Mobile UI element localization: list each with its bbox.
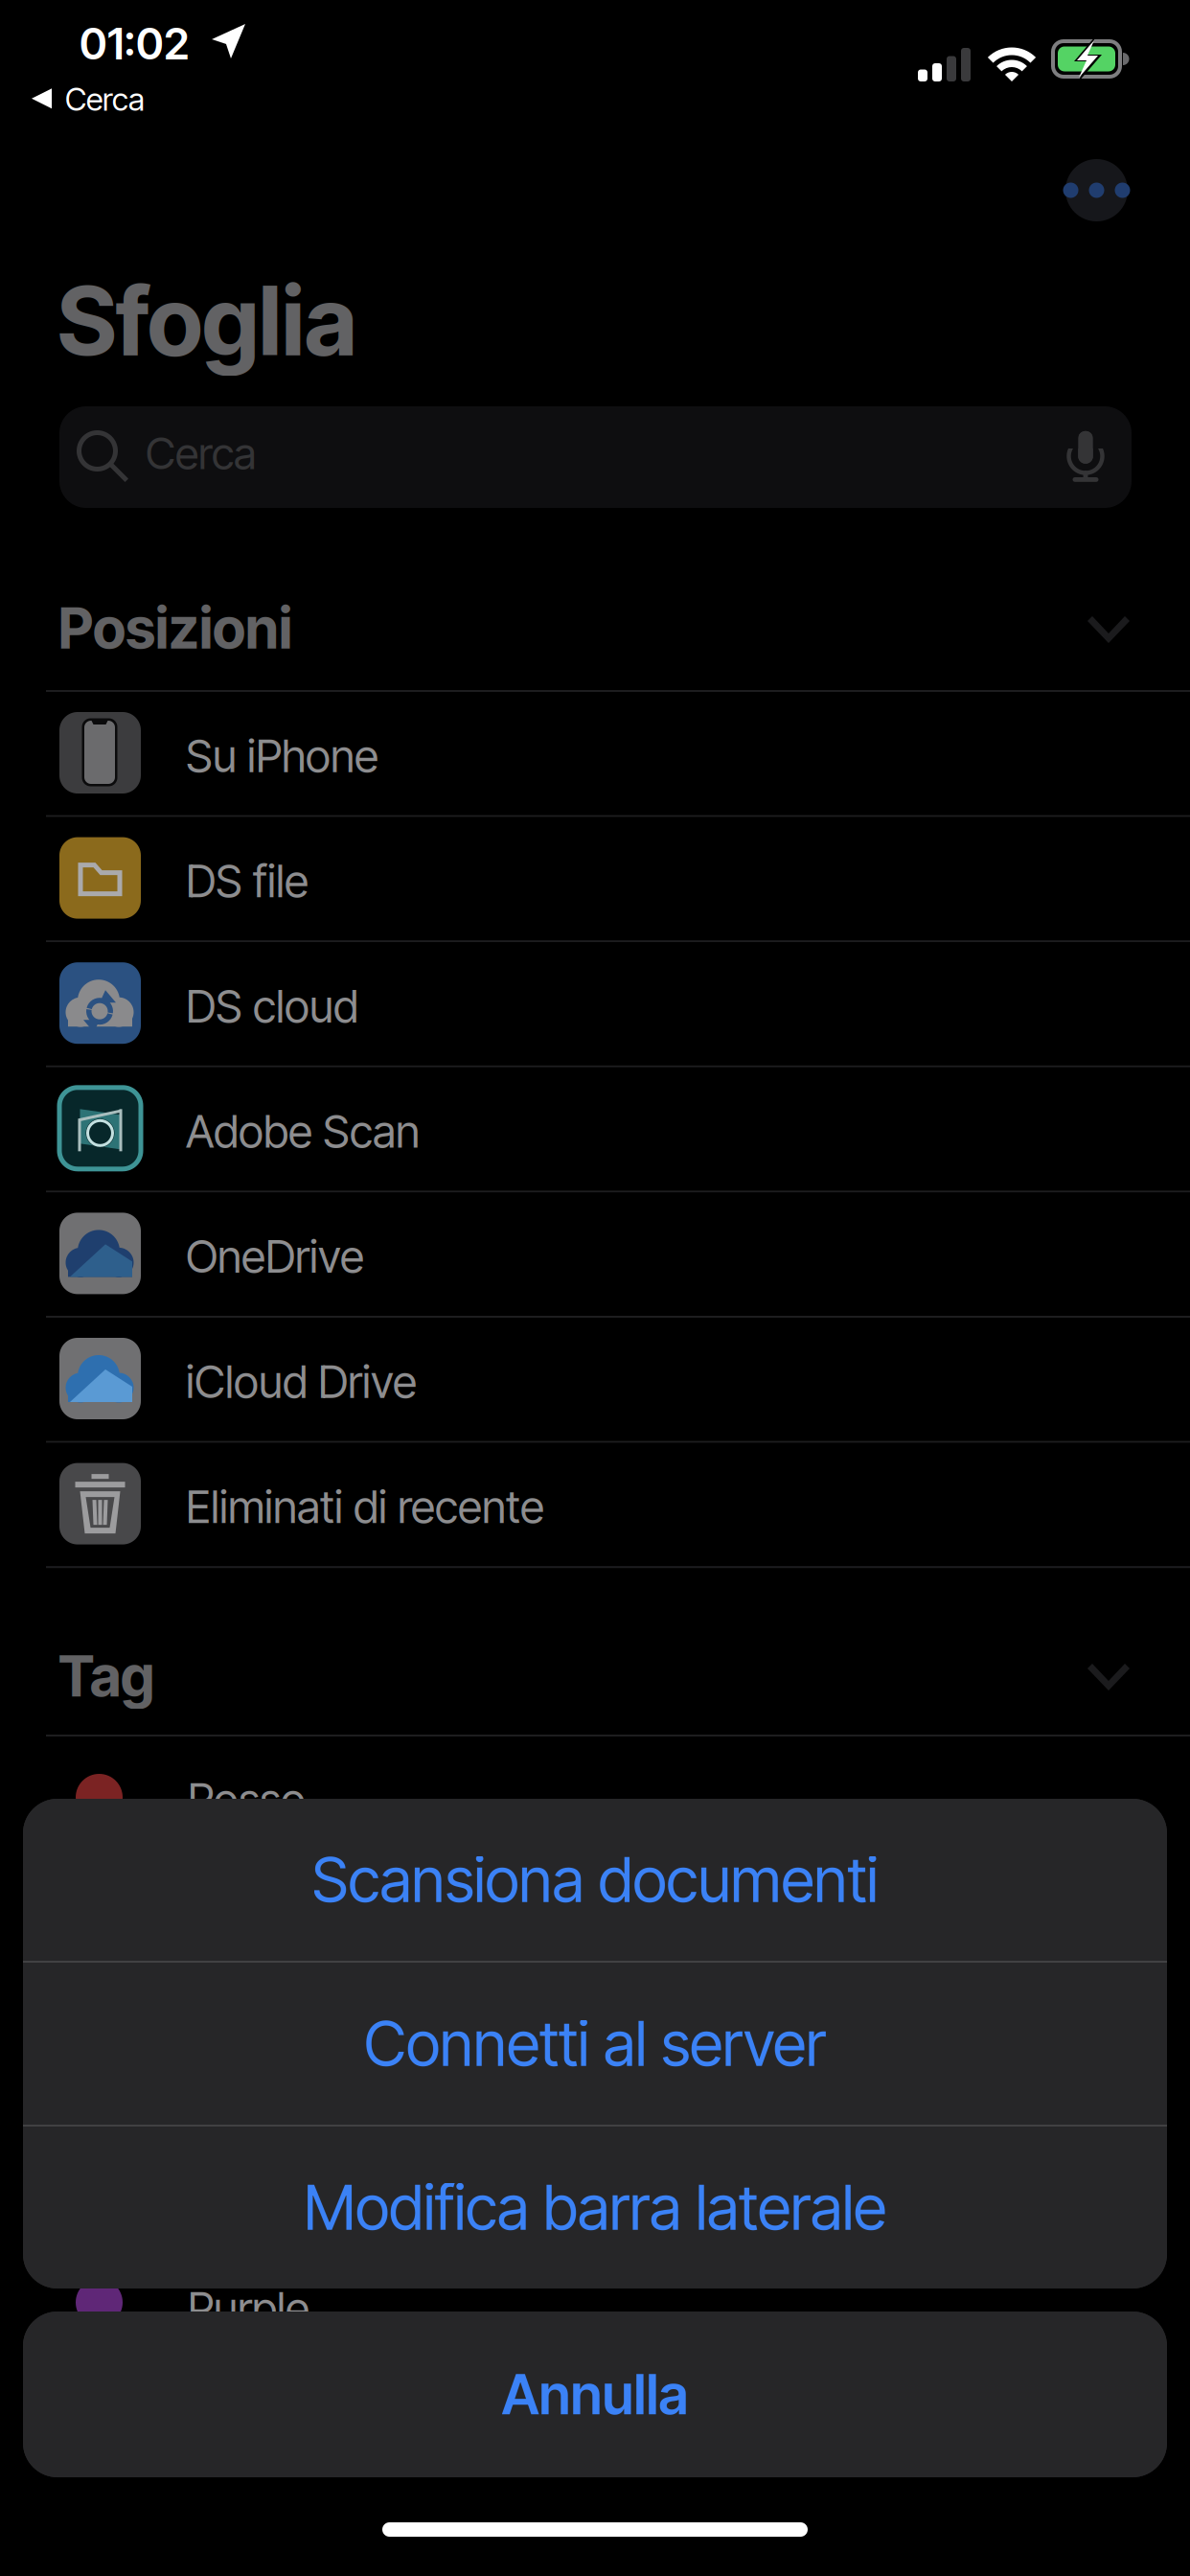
button[interactable]: iCloud Drive (0, 1318, 1190, 1441)
button[interactable]: Collapse Tag (1059, 1631, 1158, 1723)
staticText: iCloud Drive (186, 1355, 417, 1409)
button[interactable]: Adobe Scan (0, 1067, 1190, 1191)
button[interactable]: Annulla (23, 2311, 1167, 2477)
staticText: Cerca (65, 80, 145, 118)
staticText: DS file (186, 854, 309, 908)
button[interactable]: More options (1065, 159, 1128, 221)
button[interactable]: Cerca (31, 79, 184, 125)
staticText: Scansiona documenti (312, 1843, 878, 1917)
staticText: Rosso (188, 1772, 306, 1827)
button[interactable]: Connetti al server (23, 1963, 1167, 2125)
staticText: Purple (188, 2281, 309, 2335)
button[interactable]: DS cloud (0, 942, 1190, 1065)
staticText: OneDrive (186, 1229, 364, 1284)
button[interactable]: DS file (0, 817, 1190, 940)
button[interactable]: Collapse Posizioni (1059, 584, 1158, 676)
staticText: Su iPhone (186, 729, 378, 783)
staticText: Eliminati di recente (186, 1480, 544, 1534)
button[interactable]: Su iPhone (0, 692, 1190, 815)
staticText: Modifica barra laterale (304, 2170, 886, 2245)
staticText: Posizioni (58, 594, 292, 662)
button[interactable]: Scansiona documenti (23, 1799, 1167, 1961)
staticText: 01:02 (80, 17, 189, 70)
button[interactable]: Cerca (59, 406, 1132, 508)
staticText: Tag (58, 1642, 154, 1710)
staticText: Sfoglia (57, 263, 356, 378)
staticText: Annulla (502, 2361, 688, 2428)
button[interactable]: Modifica barra laterale (23, 2127, 1167, 2288)
staticText: Connetti al server (364, 2007, 826, 2081)
staticText: DS cloud (186, 979, 358, 1033)
button[interactable]: OneDrive (0, 1193, 1190, 1316)
staticText: Adobe Scan (186, 1104, 420, 1158)
button[interactable]: Eliminati di recente (0, 1443, 1190, 1566)
staticText: Cerca (146, 427, 256, 480)
